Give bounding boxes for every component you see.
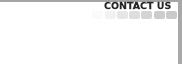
button[interactable]: Navigation item bbox=[129, 11, 140, 19]
staticText: CONTACT US bbox=[104, 0, 172, 11]
button[interactable]: Navigation item bbox=[154, 11, 165, 19]
button[interactable]: Navigation item bbox=[141, 11, 152, 19]
button[interactable]: Navigation item bbox=[117, 11, 128, 19]
button[interactable]: Navigation item bbox=[166, 11, 177, 19]
